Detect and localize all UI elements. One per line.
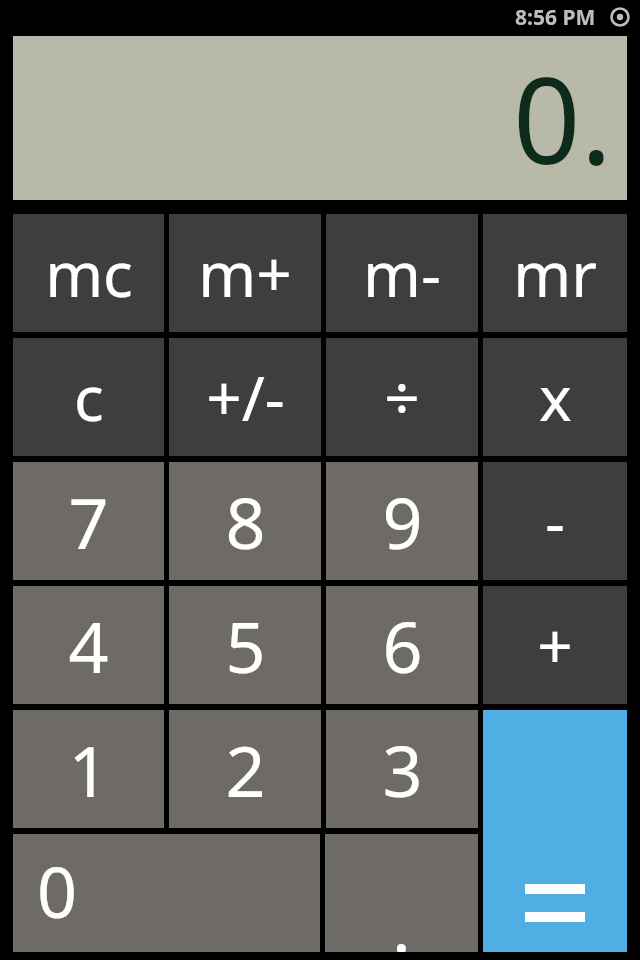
button[interactable]: . — [325, 834, 478, 952]
staticText: ÷ — [384, 355, 420, 439]
staticText: 2 — [225, 722, 266, 817]
staticText: mr — [513, 231, 597, 315]
button[interactable]: 9 — [326, 462, 478, 580]
button[interactable]: 0 — [13, 834, 320, 952]
button[interactable]: 7 — [13, 462, 164, 580]
button[interactable]: x — [483, 338, 627, 456]
button[interactable]: c — [13, 338, 164, 456]
button[interactable]: 3 — [326, 710, 478, 828]
button[interactable]: + — [483, 586, 627, 704]
staticText: . — [392, 878, 411, 952]
button[interactable]: Equals — [483, 710, 627, 952]
button[interactable]: mr — [483, 214, 627, 332]
staticText: m+ — [198, 231, 292, 315]
staticText: - — [545, 479, 565, 563]
button[interactable]: 1 — [13, 710, 164, 828]
button[interactable]: 4 — [13, 586, 164, 704]
button[interactable]: m- — [326, 214, 478, 332]
staticText: c — [74, 355, 104, 439]
other: Location — [610, 7, 630, 27]
button[interactable]: 5 — [169, 586, 321, 704]
staticText: mc — [45, 231, 133, 315]
button[interactable]: mc — [13, 214, 164, 332]
staticText: 4 — [68, 598, 109, 693]
staticText: 3 — [382, 722, 423, 817]
staticText: 5 — [225, 598, 266, 693]
staticText: 0. — [513, 38, 613, 199]
button[interactable]: - — [483, 462, 627, 580]
button[interactable]: +/- — [169, 338, 321, 456]
staticText: + — [537, 603, 573, 687]
staticText: 7 — [68, 474, 109, 569]
staticText: x — [539, 355, 572, 439]
button[interactable]: 2 — [169, 710, 321, 828]
staticText: 1 — [68, 722, 109, 817]
staticText: 8:56 PM — [515, 3, 596, 32]
button[interactable]: 8 — [169, 462, 321, 580]
button[interactable]: ÷ — [326, 338, 478, 456]
staticText: m- — [363, 231, 441, 315]
staticText: 9 — [382, 474, 423, 569]
button[interactable]: m+ — [169, 214, 321, 332]
button[interactable]: 6 — [326, 586, 478, 704]
staticText: 8 — [225, 474, 266, 569]
staticText: +/- — [206, 355, 285, 439]
staticText: 6 — [382, 598, 423, 693]
staticText: 0 — [37, 843, 78, 938]
